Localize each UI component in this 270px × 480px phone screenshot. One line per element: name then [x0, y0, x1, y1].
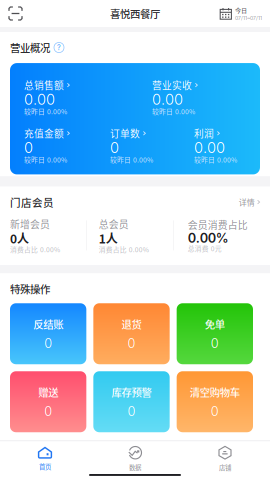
- staticText: 店铺: [219, 463, 231, 472]
- button[interactable]: 利润: [194, 126, 254, 164]
- staticText: 0: [211, 335, 219, 351]
- staticText: 退货: [121, 316, 141, 332]
- button[interactable]: 营业实收: [152, 78, 254, 116]
- staticText: 特殊操作: [10, 281, 50, 296]
- staticText: 赠送: [38, 384, 58, 400]
- staticText: 07/11~07/11: [235, 15, 262, 21]
- staticText: 订单数: [110, 126, 140, 140]
- staticText: 较昨日 0.00%: [194, 155, 237, 164]
- staticText: 今日: [235, 6, 247, 15]
- staticText: 较昨日 0.00%: [24, 155, 67, 164]
- staticText: 0.00: [152, 91, 183, 108]
- staticText: 会员消费占比: [188, 218, 248, 232]
- staticText: 1人: [99, 229, 118, 247]
- button[interactable]: 清空购物车: [177, 371, 253, 432]
- staticText: 营业概况: [10, 40, 50, 55]
- staticText: 0: [110, 139, 119, 156]
- button[interactable]: 总销售额: [24, 78, 152, 116]
- staticText: 0: [24, 139, 33, 156]
- button[interactable]: 订单数: [110, 126, 194, 164]
- staticText: 利润: [194, 126, 214, 140]
- staticText: 0: [44, 335, 52, 351]
- staticText: 0.00: [24, 91, 55, 108]
- staticText: 较昨日 0.00%: [152, 106, 195, 116]
- staticText: 0: [127, 403, 135, 419]
- button[interactable]: 店铺: [180, 444, 270, 474]
- staticText: 0.00%: [188, 230, 229, 246]
- staticText: 首页: [39, 462, 51, 471]
- staticText: 总消费 0元: [188, 243, 222, 253]
- staticText: 0: [127, 335, 135, 351]
- button[interactable]: 数据: [90, 444, 180, 474]
- button[interactable]: 首页: [0, 445, 90, 473]
- button[interactable]: 日期范围 今日: [220, 0, 270, 27]
- button[interactable]: 退货: [93, 303, 170, 364]
- staticText: 新增会员: [10, 217, 50, 231]
- staticText: 0人: [10, 229, 29, 247]
- button[interactable]: 赠送: [10, 371, 86, 432]
- button[interactable]: 扫一扫: [0, 0, 31, 27]
- staticText: 消费占比 0.00%: [99, 244, 149, 254]
- staticText: 较昨日 0.00%: [110, 155, 153, 164]
- staticText: 充值金额: [24, 126, 64, 140]
- staticText: 总销售额: [24, 78, 64, 92]
- staticText: 免单: [205, 316, 225, 332]
- staticText: 库存预警: [111, 384, 151, 400]
- staticText: 总会员: [99, 217, 129, 231]
- staticText: 营业实收: [152, 78, 192, 92]
- staticText: 0: [44, 403, 52, 419]
- button[interactable]: 库存预警: [93, 371, 170, 432]
- button[interactable]: 反结账: [10, 303, 86, 364]
- staticText: 清空购物车: [190, 384, 240, 400]
- button[interactable]: 充值金额: [24, 126, 110, 164]
- staticText: 0.00: [194, 139, 225, 156]
- staticText: 数据: [129, 463, 141, 472]
- staticText: 0: [211, 403, 219, 419]
- staticText: ?: [57, 43, 61, 52]
- staticText: 详情: [239, 196, 255, 208]
- staticText: 喜悦西餐厅: [110, 6, 160, 21]
- button[interactable]: 免单: [177, 303, 253, 364]
- staticText: 消费占比 0.00%: [10, 244, 60, 254]
- button[interactable]: 详情: [239, 196, 260, 208]
- staticText: 反结账: [33, 316, 63, 332]
- staticText: 较昨日 0.00%: [24, 106, 67, 116]
- staticText: 门店会员: [10, 194, 54, 210]
